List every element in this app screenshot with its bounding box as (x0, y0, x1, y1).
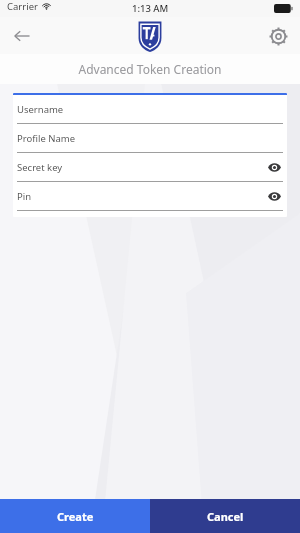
button[interactable]: Pin (13, 182, 287, 211)
button[interactable]: Create (0, 499, 150, 533)
button[interactable]: Cancel (150, 499, 300, 533)
staticText: Create (57, 509, 94, 524)
staticText: Cancel (207, 509, 244, 524)
button[interactable]: Settings (262, 20, 294, 52)
staticText: Pin (17, 190, 265, 203)
button[interactable]: Profile Name (13, 124, 287, 153)
staticText: Advanced Token Creation (78, 61, 222, 77)
button[interactable]: Show Secret key (265, 158, 283, 176)
staticText: 1:13 AM (132, 2, 169, 15)
staticText: Profile Name (17, 132, 283, 145)
staticText: Username (17, 103, 283, 116)
button[interactable]: Username (13, 95, 287, 124)
button[interactable]: Show Pin (265, 187, 283, 205)
staticText: Secret key (17, 161, 265, 174)
button[interactable]: Secret key (13, 153, 287, 182)
staticText: Carrier (7, 0, 38, 13)
button[interactable]: Back (6, 20, 38, 52)
